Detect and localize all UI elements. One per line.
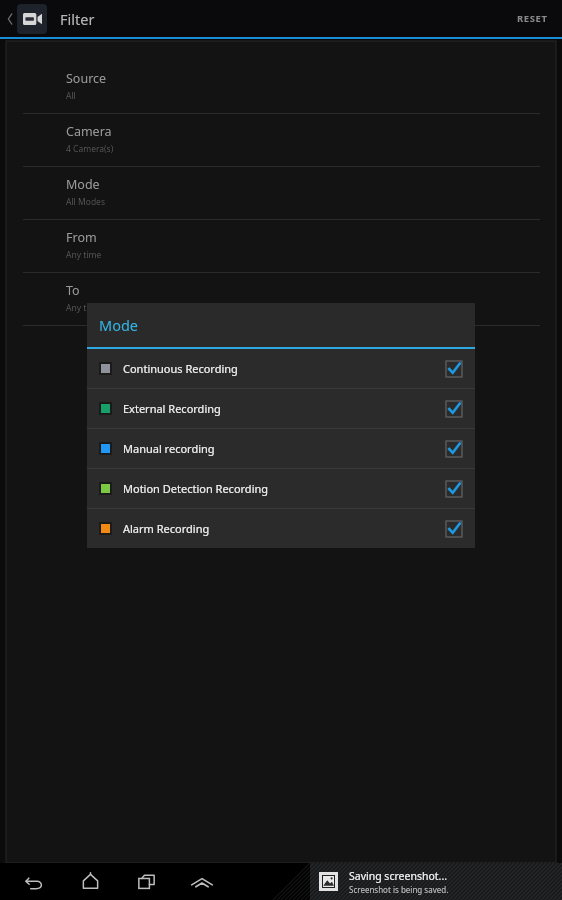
staticText: To [66,282,80,299]
staticText: Mode [66,176,100,193]
button[interactable]: Recents [118,863,174,900]
staticText: From [66,229,97,246]
staticText: All [66,90,76,102]
button[interactable]: Menu [174,863,230,900]
staticText: All Modes [66,196,105,208]
staticText: Motion Detection Recording [123,481,269,496]
button[interactable]: Continuous Recording [87,349,475,388]
button[interactable]: Source [6,61,556,113]
button[interactable]: Alarm Recording [87,509,475,548]
staticText: Any time [66,302,102,314]
staticText: Mode [99,315,139,335]
button[interactable]: Motion Detection Recording [87,469,475,508]
button[interactable]: Home [62,863,118,900]
staticText: RESET [517,12,548,25]
staticText: Filter [60,9,95,29]
button[interactable]: Mode [6,167,556,219]
staticText: External Recording [123,401,221,416]
staticText: Saving screenshot... [349,869,448,883]
button[interactable]: Back [6,863,62,900]
button[interactable]: To [6,273,556,325]
button[interactable]: Camera [6,114,556,166]
staticText: Alarm Recording [123,521,210,536]
button[interactable]: From [6,220,556,272]
staticText: Camera [66,123,112,140]
staticText: Continuous Recording [123,361,238,376]
staticText: Any time [66,249,102,261]
button[interactable]: RESET [503,4,562,33]
staticText: Source [66,70,107,87]
button[interactable]: External Recording [87,389,475,428]
staticText: Screenshot is being saved. [349,884,449,895]
button[interactable]: Back [4,4,49,34]
button[interactable]: Manual recording [87,429,475,468]
staticText: Manual recording [123,441,215,456]
staticText: 4 Camera(s) [66,143,114,155]
